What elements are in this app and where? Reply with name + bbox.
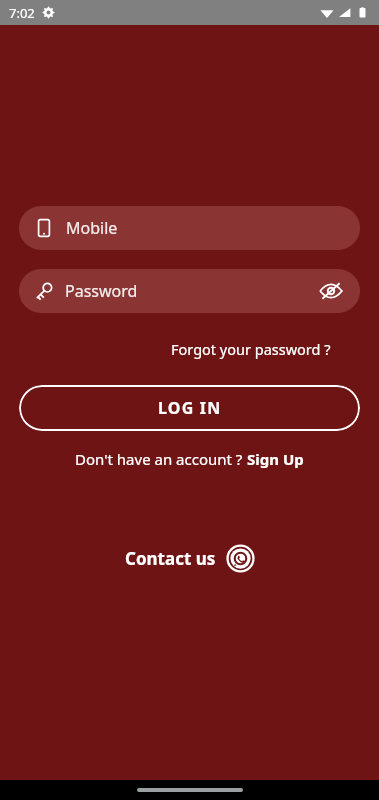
button[interactable]: LOG IN — [19, 385, 360, 431]
button[interactable]: Mobile — [19, 206, 360, 250]
staticText: 7:02 — [9, 4, 35, 22]
button[interactable]: Forgot your password ? — [167, 335, 335, 363]
staticText: Password — [65, 280, 138, 302]
staticText: Sign Up — [247, 449, 304, 469]
staticText: Mobile — [66, 217, 118, 239]
staticText: Don't have an account ? — [75, 449, 247, 469]
button[interactable]: Password — [19, 269, 360, 313]
staticText: LOG IN — [158, 397, 222, 419]
staticText: Contact us — [125, 547, 216, 570]
button[interactable]: Contact us — [121, 541, 258, 576]
staticText: Forgot your password ? — [171, 339, 331, 359]
button[interactable]: Sign Up — [247, 449, 304, 469]
button[interactable]: Show password — [316, 276, 346, 306]
